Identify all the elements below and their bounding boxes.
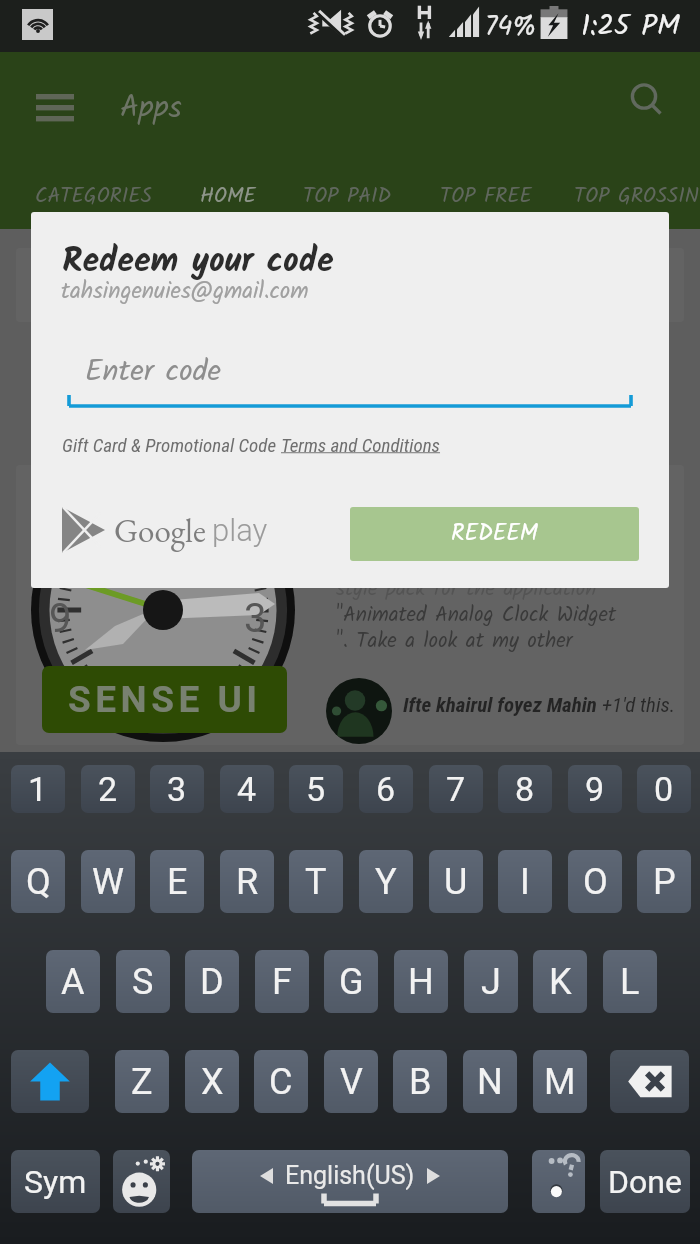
button[interactable]: D — [185, 950, 239, 1013]
button[interactable]: Sym — [11, 1150, 100, 1213]
button[interactable]: Done — [600, 1150, 690, 1213]
button[interactable]: I — [498, 850, 552, 913]
button[interactable]: 3 — [150, 765, 204, 813]
staticText: U — [444, 861, 468, 903]
staticText: O — [583, 861, 608, 903]
button[interactable]: B — [393, 1050, 447, 1113]
button[interactable]: TOP PAID — [303, 172, 392, 220]
staticText: 8 — [515, 769, 535, 809]
button[interactable]: Space, English(US) — [192, 1150, 508, 1213]
button[interactable]: Terms and Conditions — [281, 434, 441, 456]
button[interactable]: U — [429, 850, 483, 913]
button[interactable]: 9 — [16, 465, 684, 745]
button[interactable]: 6 — [359, 765, 413, 813]
staticText: 5 — [306, 769, 326, 809]
staticText: 3 — [244, 595, 267, 642]
button[interactable]: Q — [11, 850, 65, 913]
staticText: M — [544, 1061, 576, 1103]
button[interactable]: 1 — [11, 765, 65, 813]
staticText: "Animated Analog Clock Widget — [336, 599, 617, 632]
button[interactable]: Backspace — [610, 1050, 689, 1113]
button[interactable]: T — [289, 850, 343, 913]
button[interactable]: R — [220, 850, 274, 913]
button[interactable]: 0 — [637, 765, 691, 813]
staticText: 0 — [654, 769, 674, 809]
button[interactable]: 2 — [81, 765, 135, 813]
staticText: +1'd this. — [602, 693, 676, 718]
staticText: T — [305, 861, 327, 903]
staticText: N — [477, 1061, 503, 1103]
staticText: B — [409, 1061, 432, 1103]
staticText: A — [61, 961, 85, 1003]
button[interactable]: 9 — [568, 765, 622, 813]
staticText: F — [272, 961, 292, 1003]
staticText: R — [236, 861, 259, 903]
button[interactable]: TOP GROSSING — [574, 172, 700, 220]
staticText: 6 — [376, 769, 396, 809]
staticText: Z — [131, 1061, 153, 1103]
staticText: 1 — [28, 769, 48, 809]
staticText: Done — [608, 1163, 682, 1201]
staticText: H — [408, 961, 434, 1003]
button[interactable]: Y — [359, 850, 413, 913]
button[interactable]: F — [255, 950, 309, 1013]
staticText: REDEEM — [451, 516, 538, 553]
button[interactable]: N — [463, 1050, 517, 1113]
button[interactable]: 8 — [498, 765, 552, 813]
staticText: Ifte khairul foyez Mahin — [403, 693, 602, 718]
staticText: 2 — [98, 769, 118, 809]
button[interactable]: C — [254, 1050, 308, 1113]
staticText: S — [132, 961, 154, 1003]
button[interactable]: 4 — [220, 765, 274, 813]
button[interactable]: CATEGORIES — [35, 172, 152, 220]
button[interactable]: H — [394, 950, 448, 1013]
staticText: Y — [375, 861, 397, 903]
button[interactable]: V — [324, 1050, 378, 1113]
staticText: 4 — [237, 769, 257, 809]
button[interactable]: J — [464, 950, 518, 1013]
staticText: G — [339, 961, 364, 1003]
staticText: 9 — [49, 595, 72, 642]
staticText: SENSE UI — [68, 678, 262, 721]
staticText: play — [212, 512, 268, 548]
button[interactable] — [16, 248, 684, 322]
button[interactable]: M — [533, 1050, 587, 1113]
staticText: style pack for the application — [336, 573, 597, 606]
button[interactable]: P — [637, 850, 691, 913]
button[interactable]: A — [46, 950, 100, 1013]
staticText: WIREDFRAME — [122, 569, 229, 589]
staticText: J — [481, 961, 501, 1003]
button[interactable]: TOP FREE — [440, 172, 532, 220]
button[interactable]: Shift — [11, 1050, 89, 1113]
staticText: Redeem your code — [62, 235, 334, 289]
button[interactable]: HOME — [200, 172, 256, 220]
staticText: TOP GROSSING — [574, 180, 700, 213]
button[interactable]: Period and symbols — [532, 1150, 585, 1213]
staticText: C — [269, 1061, 293, 1103]
button[interactable]: Z — [115, 1050, 169, 1113]
staticText: K — [549, 961, 572, 1003]
staticText: L — [620, 961, 640, 1003]
button[interactable]: O — [568, 850, 622, 913]
staticText: Google — [114, 509, 206, 552]
button[interactable]: Open navigation drawer — [26, 78, 84, 136]
staticText: 7 — [446, 769, 466, 809]
button[interactable]: G — [324, 950, 378, 1013]
button[interactable]: K — [533, 950, 587, 1013]
button[interactable]: Search — [620, 74, 676, 130]
staticText: E — [167, 861, 188, 903]
button[interactable]: Emoji and settings — [113, 1150, 170, 1213]
button[interactable]: 7 — [429, 765, 483, 813]
staticText: 74% — [485, 6, 537, 49]
staticText: TOP PAID — [303, 180, 392, 213]
button[interactable]: W — [81, 850, 135, 913]
button[interactable]: REDEEM — [350, 507, 639, 561]
staticText: D — [200, 961, 224, 1003]
staticText: V — [340, 1061, 363, 1103]
button[interactable]: E — [150, 850, 204, 913]
button[interactable]: L — [603, 950, 657, 1013]
button[interactable]: S — [116, 950, 170, 1013]
button[interactable]: 5 — [289, 765, 343, 813]
button[interactable]: X — [185, 1050, 239, 1113]
staticText: X — [201, 1061, 224, 1103]
